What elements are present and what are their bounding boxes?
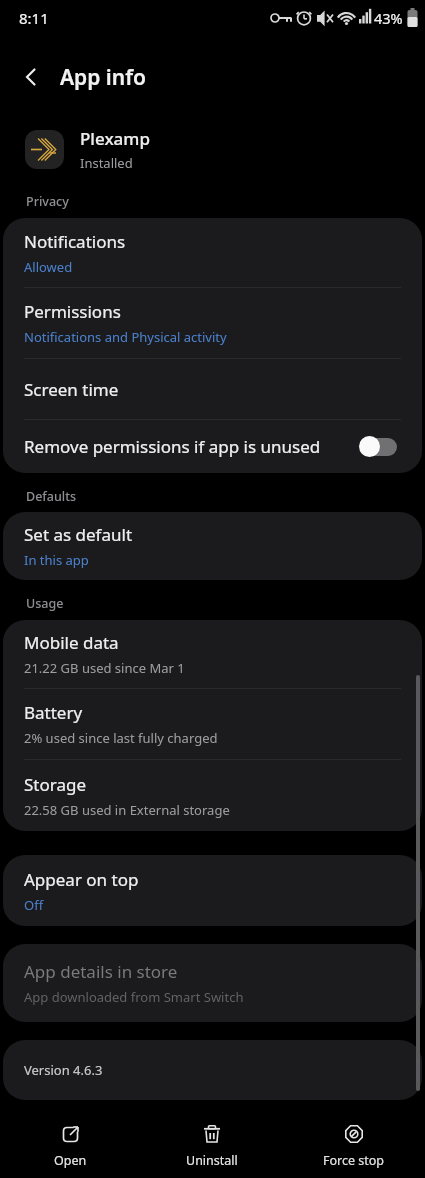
button[interactable]: Storage [3,760,422,831]
staticText: 22.58 GB used in External storage [24,801,230,819]
staticText: Notifications and Physical activity [24,328,227,346]
staticText: Permissions [24,300,121,323]
button[interactable]: Mobile data [3,620,422,688]
staticText: 43% [374,8,403,28]
staticText: Storage [24,773,87,796]
staticText: 21.22 GB used since Mar 1 [24,659,185,677]
button[interactable]: Permissions [3,288,422,358]
staticText: 8:11 [19,8,49,28]
button[interactable]: Screen time [3,359,422,419]
staticText: Set as default [24,523,133,546]
staticText: Open [54,1152,87,1169]
staticText: In this app [24,551,89,569]
staticText: App details in store [24,960,178,983]
staticText: 2% used since last fully charged [24,729,218,747]
staticText: Force stop [323,1152,385,1169]
button[interactable] [16,62,46,92]
button[interactable]: Version 4.6.3 [3,1040,422,1100]
staticText: Appear on top [24,868,139,891]
staticText: Version 4.6.3 [24,1061,103,1079]
staticText: Screen time [24,378,119,401]
button[interactable]: Force stop [283,1108,425,1169]
button[interactable]: Battery [3,689,422,759]
staticText: Privacy [26,193,69,210]
staticText: App downloaded from Smart Switch [24,988,244,1006]
staticText: App info [60,63,146,92]
staticText: Mobile data [24,631,119,654]
staticText: Remove permissions if app is unused [24,435,359,458]
staticText: Battery [24,701,83,724]
staticText: Notifications [24,230,126,253]
staticText: Uninstall [186,1152,238,1169]
staticText: Allowed [24,258,73,276]
staticText: Off [24,896,44,914]
button[interactable]: App details in store [3,944,422,1022]
button[interactable]: Open [0,1108,141,1169]
staticText: Defaults [26,488,77,505]
button[interactable]: Remove permissions if app is unused [3,420,422,473]
button[interactable]: Set as default [3,512,422,580]
button[interactable]: Notifications [3,218,422,287]
button[interactable]: Appear on top [3,855,422,926]
staticText: Usage [26,595,64,612]
staticText: Plexamp [80,127,150,150]
staticText: Installed [80,154,133,172]
button[interactable]: Uninstall [141,1108,283,1169]
